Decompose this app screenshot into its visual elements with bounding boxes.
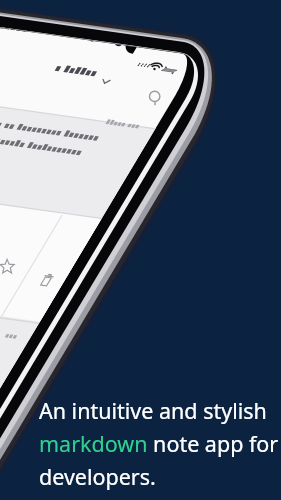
staticText: An intuitive and stylish markdown note a…: [39, 396, 279, 491]
